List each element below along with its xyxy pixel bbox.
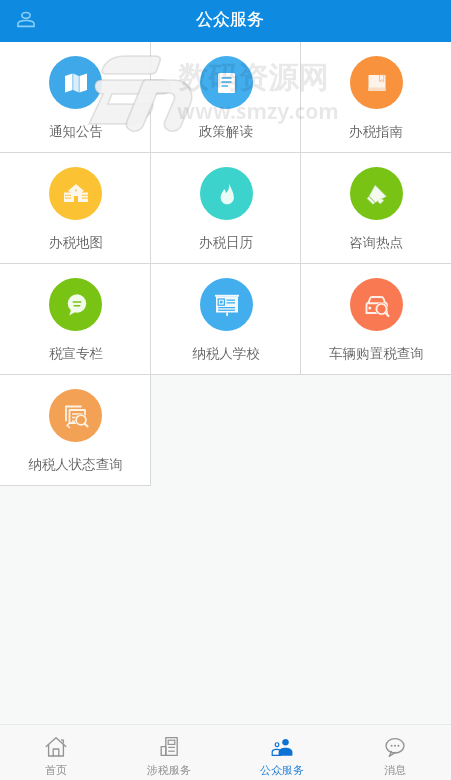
staticText: 税宣专栏 bbox=[49, 345, 103, 362]
button[interactable]: 咨询热点 bbox=[301, 153, 451, 264]
button[interactable]: 政策解读 bbox=[151, 42, 301, 153]
button[interactable]: 纳税人状态查询 bbox=[0, 375, 151, 486]
staticText: 公众服务 bbox=[260, 763, 304, 777]
button[interactable]: Account bbox=[8, 3, 44, 39]
staticText: 车辆购置税查询 bbox=[329, 345, 424, 362]
staticText: 政策解读 bbox=[199, 123, 253, 140]
staticText: 办税地图 bbox=[49, 234, 103, 251]
button[interactable]: 税宣专栏 bbox=[0, 264, 151, 375]
staticText: 纳税人状态查询 bbox=[28, 456, 123, 473]
button[interactable]: 纳税人学校 bbox=[151, 264, 301, 375]
staticText: 通知公告 bbox=[49, 123, 103, 140]
staticText: 数码资源网 bbox=[178, 59, 328, 97]
staticText: 咨询热点 bbox=[349, 234, 403, 251]
staticText: 消息 bbox=[384, 763, 406, 777]
staticText: 办税日历 bbox=[199, 234, 253, 251]
staticText: 公众服务 bbox=[196, 9, 264, 30]
button[interactable]: 首页 bbox=[0, 725, 112, 780]
button[interactable]: 通知公告 bbox=[0, 42, 151, 153]
button[interactable]: 消息 bbox=[338, 725, 451, 780]
button[interactable]: 涉税服务 bbox=[112, 725, 225, 780]
button[interactable]: 车辆购置税查询 bbox=[301, 264, 451, 375]
button[interactable]: 办税地图 bbox=[0, 153, 151, 264]
button[interactable]: 公众服务 bbox=[225, 725, 338, 780]
button[interactable]: 办税指南 bbox=[301, 42, 451, 153]
staticText: www.smzy.com bbox=[177, 97, 339, 126]
staticText: 首页 bbox=[45, 763, 67, 777]
staticText: 纳税人学校 bbox=[192, 345, 260, 362]
staticText: 办税指南 bbox=[349, 123, 403, 140]
button[interactable]: 办税日历 bbox=[151, 153, 301, 264]
staticText: 涉税服务 bbox=[147, 763, 191, 777]
